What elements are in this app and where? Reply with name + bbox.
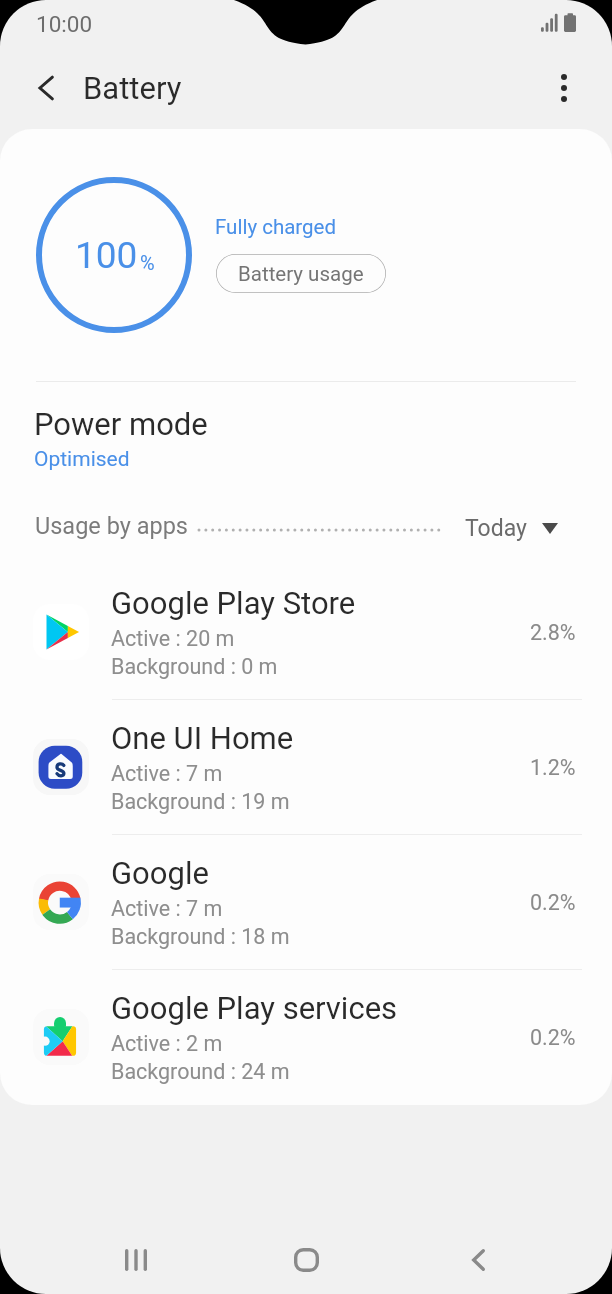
staticText: Active : 2 m (111, 1031, 223, 1056)
staticText: Active : 7 m (111, 896, 223, 921)
staticText: 0.2% (530, 1025, 576, 1050)
staticText: Google (111, 855, 209, 891)
staticText: Active : 7 m (111, 761, 223, 786)
button[interactable]: Navigate up (18, 60, 74, 116)
button[interactable]: More options (536, 60, 592, 116)
button[interactable]: Battery usage (216, 254, 386, 293)
staticText: Background : 19 m (111, 789, 290, 814)
staticText: 2.8% (530, 620, 576, 645)
staticText: Power mode (34, 406, 208, 442)
button[interactable]: Back (418, 1200, 538, 1294)
staticText: Today (465, 515, 527, 542)
staticText: 10:00 (36, 11, 93, 37)
staticText: Usage by apps (35, 512, 188, 540)
button[interactable]: Recent apps (76, 1200, 196, 1294)
staticText: % (140, 251, 155, 274)
button[interactable]: Home (246, 1200, 366, 1294)
staticText: Background : 18 m (111, 924, 290, 949)
staticText: Background : 0 m (111, 654, 278, 679)
staticText: Google Play services (111, 990, 398, 1026)
button[interactable]: Google Play services (0, 970, 612, 1105)
button[interactable]: Google Play Store (0, 565, 612, 700)
staticText: Battery (83, 70, 182, 106)
button[interactable]: One UI Home (0, 700, 612, 835)
button[interactable]: Today (454, 509, 569, 548)
staticText: 1.2% (530, 755, 576, 780)
staticText: Background : 24 m (111, 1059, 290, 1084)
staticText: Fully charged (215, 215, 337, 239)
staticText: Optimised (34, 447, 130, 472)
button[interactable]: Google (0, 835, 612, 970)
staticText: Active : 20 m (111, 626, 235, 651)
staticText: One UI Home (111, 720, 294, 756)
staticText: 100 (75, 234, 138, 277)
button[interactable]: Power mode (0, 402, 612, 478)
staticText: Battery usage (238, 262, 364, 286)
staticText: Google Play Store (111, 585, 356, 621)
staticText: 0.2% (530, 890, 576, 915)
